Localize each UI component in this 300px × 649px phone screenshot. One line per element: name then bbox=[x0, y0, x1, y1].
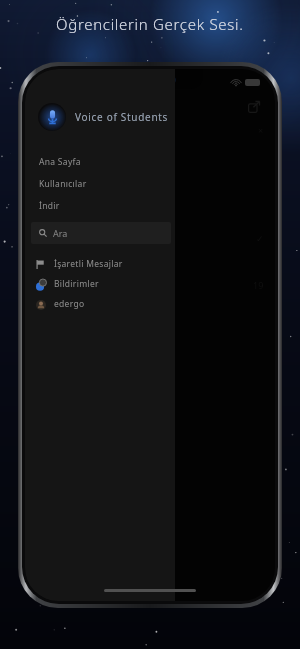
staticText: Öğrencilerin Gerçek Sesi. bbox=[56, 14, 244, 34]
button[interactable]: Voice of Students bbox=[25, 96, 175, 138]
button[interactable]: edergo bbox=[25, 294, 175, 314]
staticText: Kullanıcılar bbox=[39, 178, 87, 190]
staticText: İşaretli Mesajlar bbox=[54, 258, 123, 270]
staticText: Ana Sayfa bbox=[39, 156, 81, 168]
staticText: bileceği, fikirlerini bbox=[36, 124, 99, 134]
button[interactable]: Bildirimler bbox=[25, 274, 175, 294]
button[interactable]: Compose bbox=[244, 97, 264, 117]
staticText: İndir bbox=[39, 200, 60, 212]
staticText: edergo bbox=[54, 298, 85, 310]
button[interactable]: Kullanıcılar bbox=[25, 173, 175, 195]
button[interactable]: Ara bbox=[31, 222, 171, 244]
staticText: Bildirimler bbox=[54, 278, 99, 290]
button[interactable]: İndir bbox=[25, 195, 175, 217]
staticText: Voice of Students bbox=[75, 110, 169, 124]
button[interactable]: Ana Sayfa bbox=[25, 151, 175, 173]
staticText: nce cevapladı bbox=[36, 279, 84, 289]
button[interactable]: İşaretli Mesajlar bbox=[25, 254, 175, 274]
staticText: Ara bbox=[53, 227, 68, 239]
